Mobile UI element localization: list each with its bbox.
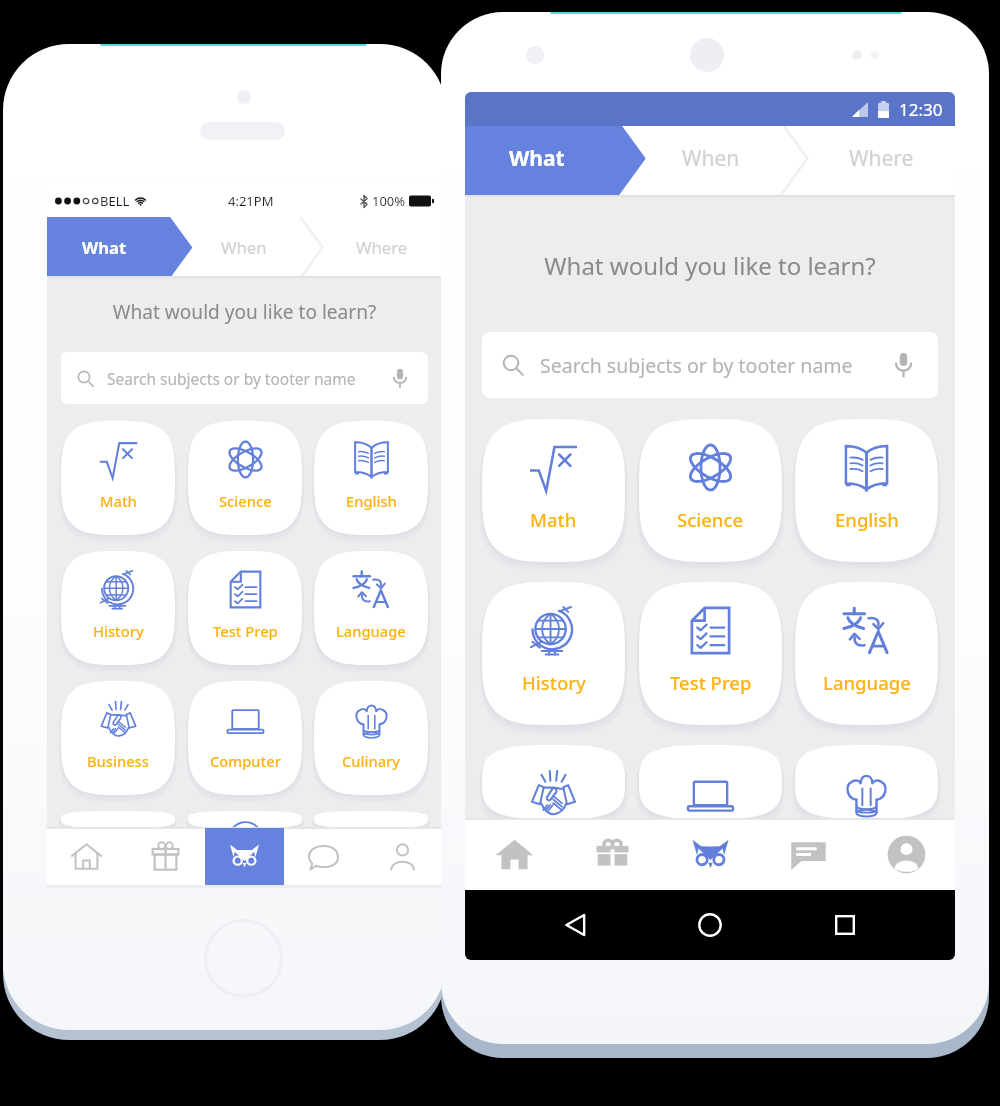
staticText: What would you like to learn? [47, 299, 442, 325]
staticText: English [835, 507, 899, 532]
button[interactable]: Test Prep [639, 582, 782, 725]
staticText: Language [823, 670, 911, 695]
button[interactable]: History [482, 582, 625, 725]
button[interactable]: When [178, 217, 310, 278]
button[interactable]: Where [310, 217, 442, 278]
staticText: Science [677, 507, 744, 532]
button[interactable]: When [629, 120, 792, 197]
button[interactable]: Gifts [563, 819, 661, 890]
button[interactable]: Profile [363, 828, 442, 885]
button[interactable]: Where [792, 120, 955, 197]
button[interactable]: Home [465, 819, 563, 890]
staticText: What [509, 144, 565, 173]
staticText: Where [849, 144, 914, 173]
button[interactable]: Art [314, 811, 428, 828]
staticText: BELL [100, 192, 130, 210]
staticText: When [221, 236, 267, 259]
button[interactable]: Messages [759, 819, 857, 890]
staticText: Math [530, 507, 577, 532]
button[interactable]: Voice search [388, 366, 412, 390]
button[interactable]: Search subjects or by tooter name [61, 352, 428, 404]
button[interactable]: Language [795, 582, 938, 725]
button[interactable]: Voice search [888, 350, 918, 380]
staticText: Search subjects or by tooter name [107, 368, 356, 389]
button[interactable]: Gifts [126, 828, 205, 885]
staticText: Science [219, 491, 272, 511]
button[interactable]: English [314, 421, 428, 535]
button[interactable]: Recents [821, 901, 869, 949]
staticText: History [93, 621, 144, 641]
staticText: Search subjects or by tooter name [540, 352, 853, 379]
button[interactable]: Back [552, 901, 600, 949]
button[interactable]: What [47, 217, 178, 278]
button[interactable]: Search subjects or by tooter name [482, 332, 938, 398]
button[interactable]: Math [482, 419, 625, 562]
staticText: Math [100, 491, 137, 511]
staticText: 12:30 [899, 98, 943, 121]
button[interactable]: Computer [639, 745, 782, 819]
button[interactable]: Science [188, 421, 302, 535]
button[interactable]: Home [47, 828, 126, 885]
button[interactable]: Tooter [205, 828, 284, 885]
staticText: Culinary [342, 751, 401, 771]
staticText: Where [356, 236, 408, 259]
button[interactable]: History [61, 551, 175, 665]
staticText: Computer [210, 751, 281, 771]
button[interactable]: Home [686, 901, 734, 949]
button[interactable]: Computer [188, 681, 302, 795]
button[interactable]: Culinary [314, 681, 428, 795]
staticText: English [346, 491, 397, 511]
staticText: When [682, 144, 740, 173]
button[interactable]: What [465, 120, 629, 197]
button[interactable]: Science [639, 419, 782, 562]
button[interactable]: Profile [857, 819, 955, 890]
button[interactable]: Culinary [795, 745, 938, 819]
button[interactable]: Sports [188, 811, 302, 828]
staticText: Business [87, 751, 149, 771]
staticText: 100% [372, 192, 406, 210]
button[interactable]: Tooter [661, 819, 759, 890]
staticText: Test Prep [670, 670, 752, 695]
staticText: Language [336, 621, 406, 641]
button[interactable]: English [795, 419, 938, 562]
button[interactable]: Music [61, 811, 175, 828]
staticText: 4:21PM [228, 192, 274, 210]
staticText: Test Prep [213, 621, 278, 641]
staticText: What would you like to learn? [465, 249, 955, 282]
button[interactable]: Test Prep [188, 551, 302, 665]
button[interactable]: Messages [284, 828, 363, 885]
button[interactable]: Business [482, 745, 625, 819]
staticText: History [522, 670, 586, 695]
button[interactable]: Language [314, 551, 428, 665]
button[interactable]: Math [61, 421, 175, 535]
staticText: What [82, 236, 127, 259]
button[interactable]: Business [61, 681, 175, 795]
